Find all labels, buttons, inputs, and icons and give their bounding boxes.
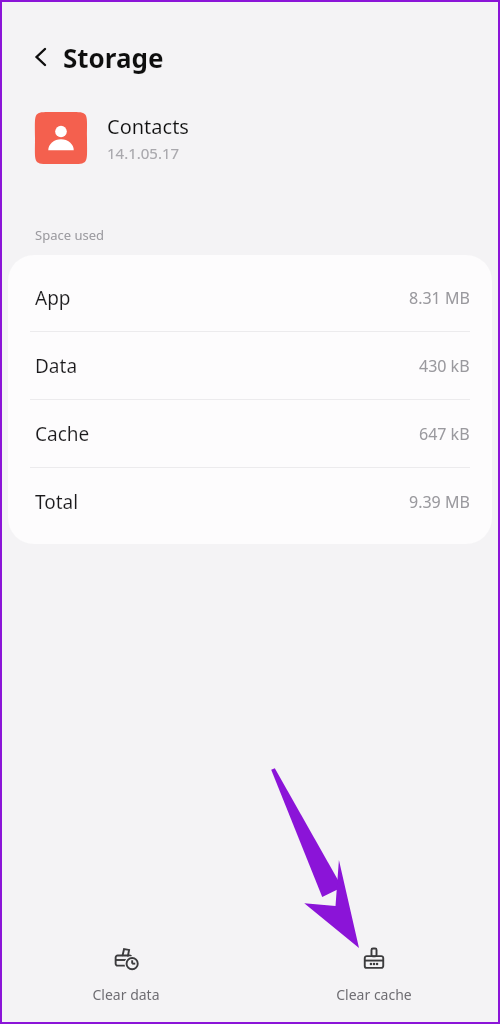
staticText: Data — [35, 353, 78, 379]
staticText: 14.1.05.17 — [107, 143, 180, 163]
staticText: App — [35, 285, 71, 311]
staticText: Contacts — [107, 113, 189, 140]
staticText: Space used — [35, 226, 104, 244]
button[interactable]: Back — [23, 39, 59, 75]
button[interactable]: Clear cache — [250, 939, 498, 1010]
staticText: Storage — [63, 40, 164, 75]
staticText: Clear cache — [336, 985, 412, 1004]
button[interactable]: Total — [8, 468, 492, 535]
staticText: Cache — [35, 421, 90, 447]
staticText: 9.39 MB — [409, 491, 470, 513]
button[interactable]: App — [8, 264, 492, 332]
staticText: Total — [35, 489, 79, 515]
staticText: 8.31 MB — [409, 287, 470, 309]
staticText: Clear data — [92, 985, 160, 1004]
button[interactable]: Cache — [8, 400, 492, 468]
staticText: 647 kB — [419, 423, 470, 445]
button[interactable]: Data — [8, 332, 492, 400]
staticText: 430 kB — [419, 355, 470, 377]
button[interactable]: Clear data — [2, 939, 250, 1010]
